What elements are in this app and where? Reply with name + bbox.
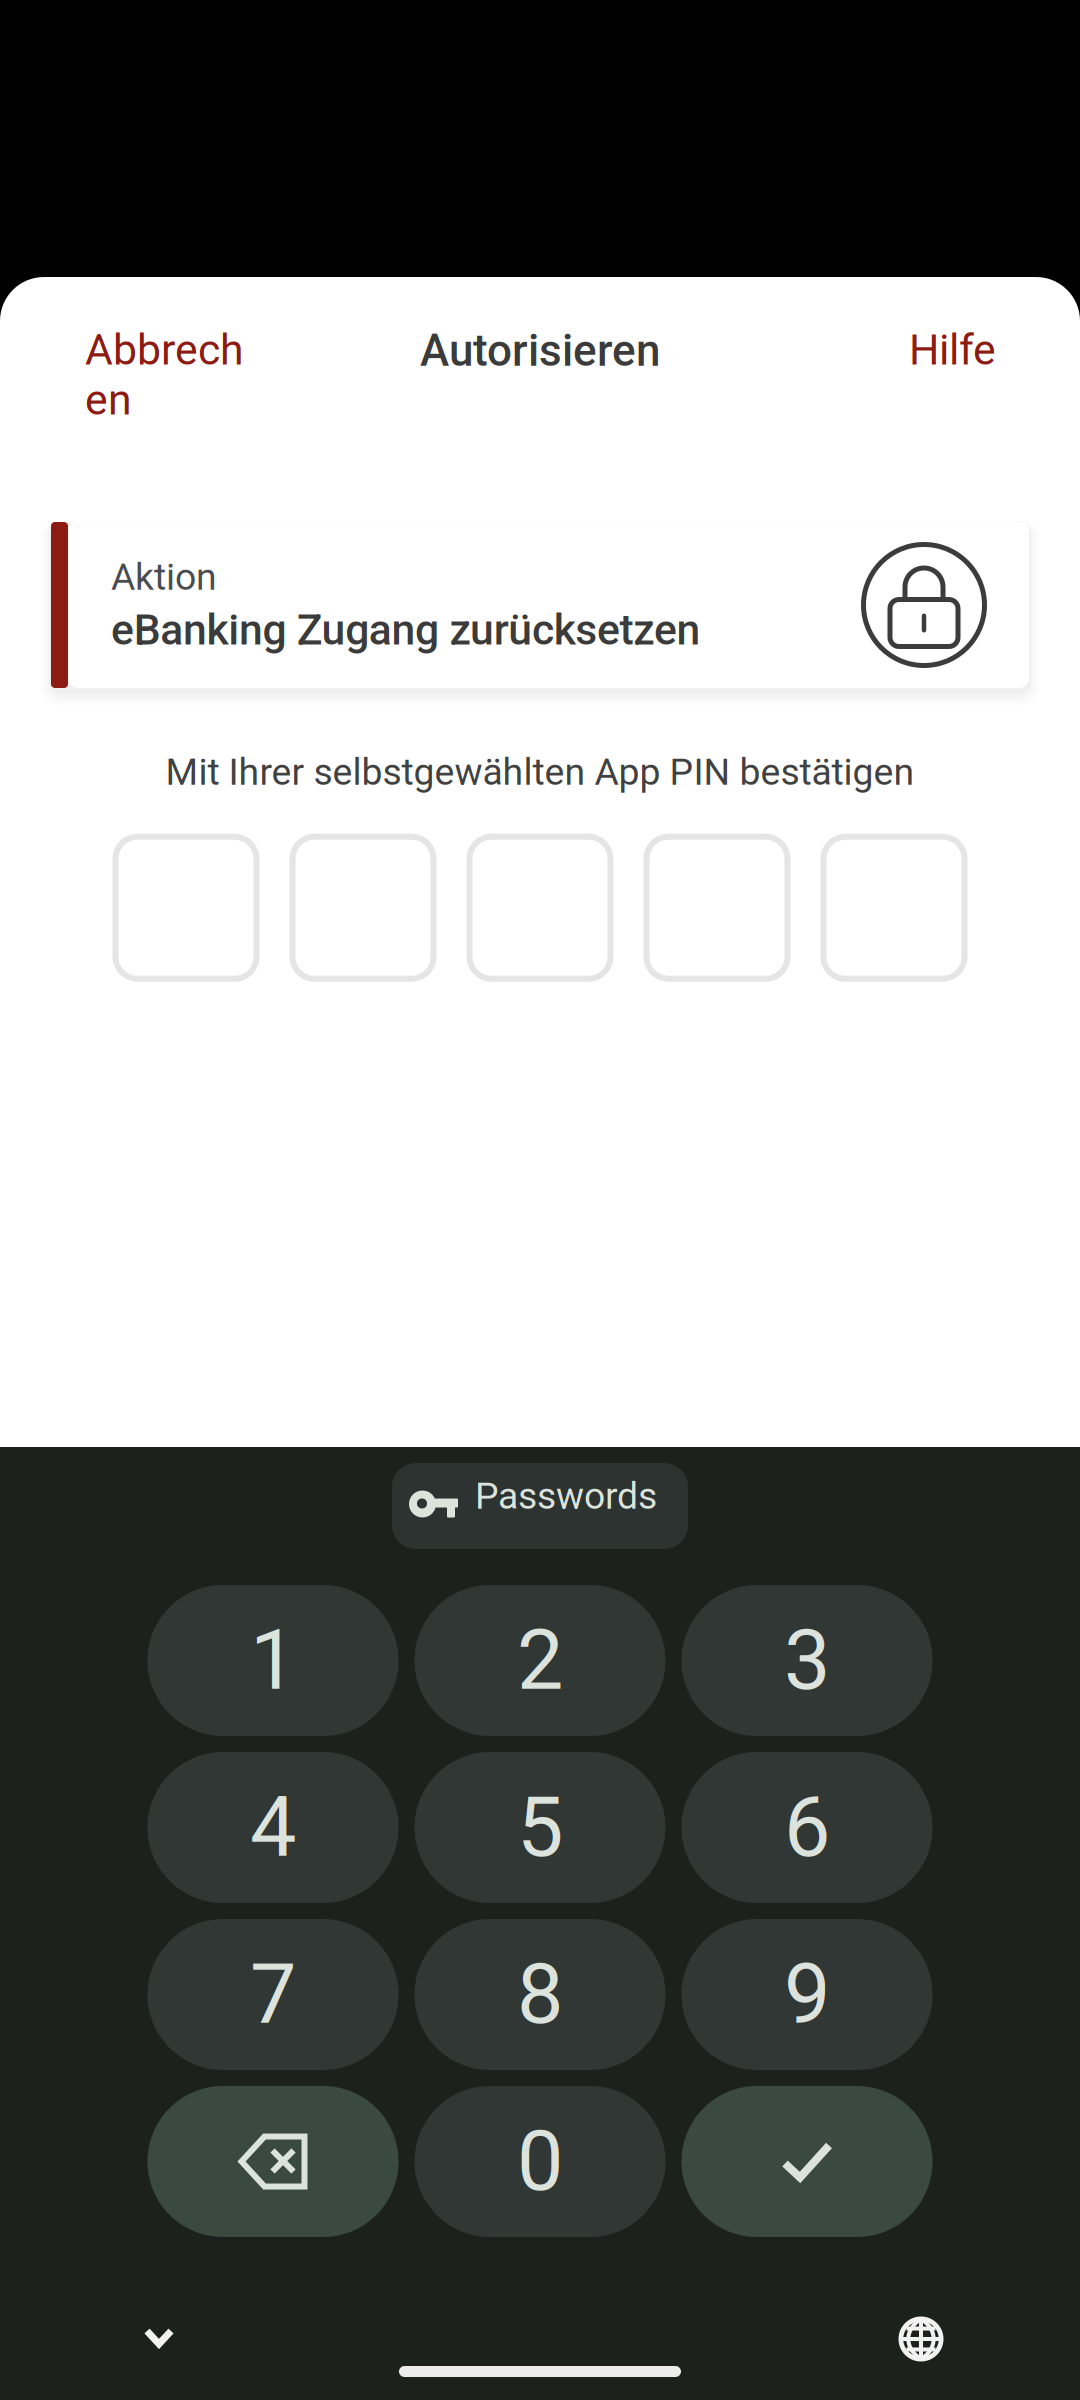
staticText: eBanking Zugang zurücksetzen xyxy=(111,605,701,655)
button[interactable]: Next keyboard xyxy=(895,2316,947,2362)
button[interactable]: Hide keyboard xyxy=(133,2316,185,2362)
button[interactable]: 5 xyxy=(414,1752,665,1903)
button[interactable]: 2 xyxy=(414,1585,665,1736)
button[interactable]: PIN digit 4 xyxy=(646,837,787,979)
button[interactable]: Confirm xyxy=(681,2086,932,2237)
button[interactable]: 6 xyxy=(681,1752,932,1903)
button[interactable]: 7 xyxy=(147,1919,398,2070)
button[interactable]: 3 xyxy=(681,1585,932,1736)
button[interactable]: PIN digit 2 xyxy=(292,837,433,979)
staticText: 8 xyxy=(517,1946,563,2043)
staticText: 3 xyxy=(784,1612,830,1709)
staticText: Abbrech xyxy=(85,325,244,375)
staticText: 9 xyxy=(784,1946,830,2043)
staticText: Autorisieren xyxy=(420,325,660,377)
staticText: 1 xyxy=(250,1612,296,1709)
staticText: Passwords xyxy=(475,1474,657,1518)
button[interactable]: Abbrechen xyxy=(85,325,265,425)
staticText: Mit Ihrer selbstgewählten App PIN bestät… xyxy=(165,750,914,794)
staticText: 0 xyxy=(517,2113,563,2210)
button[interactable]: 8 xyxy=(414,1919,665,2070)
staticText: 7 xyxy=(250,1946,296,2043)
staticText: Hilfe xyxy=(909,325,996,375)
button[interactable]: Hilfe xyxy=(909,325,996,375)
button[interactable]: 1 xyxy=(147,1585,398,1736)
button[interactable]: PIN digit 1 xyxy=(115,837,256,979)
staticText: 2 xyxy=(517,1612,563,1709)
staticText: Aktion xyxy=(111,555,217,599)
button[interactable]: 9 xyxy=(681,1919,932,2070)
button[interactable]: 0 xyxy=(414,2086,665,2237)
button[interactable]: PIN digit 3 xyxy=(469,837,610,979)
button[interactable]: Passwords xyxy=(392,1463,688,1549)
button[interactable]: 4 xyxy=(147,1752,398,1903)
button[interactable]: Delete xyxy=(147,2086,398,2237)
staticText: en xyxy=(85,375,132,425)
staticText: 5 xyxy=(517,1779,563,1876)
button[interactable]: PIN digit 5 xyxy=(823,837,964,979)
staticText: 6 xyxy=(784,1779,830,1876)
staticText: 4 xyxy=(250,1779,296,1876)
